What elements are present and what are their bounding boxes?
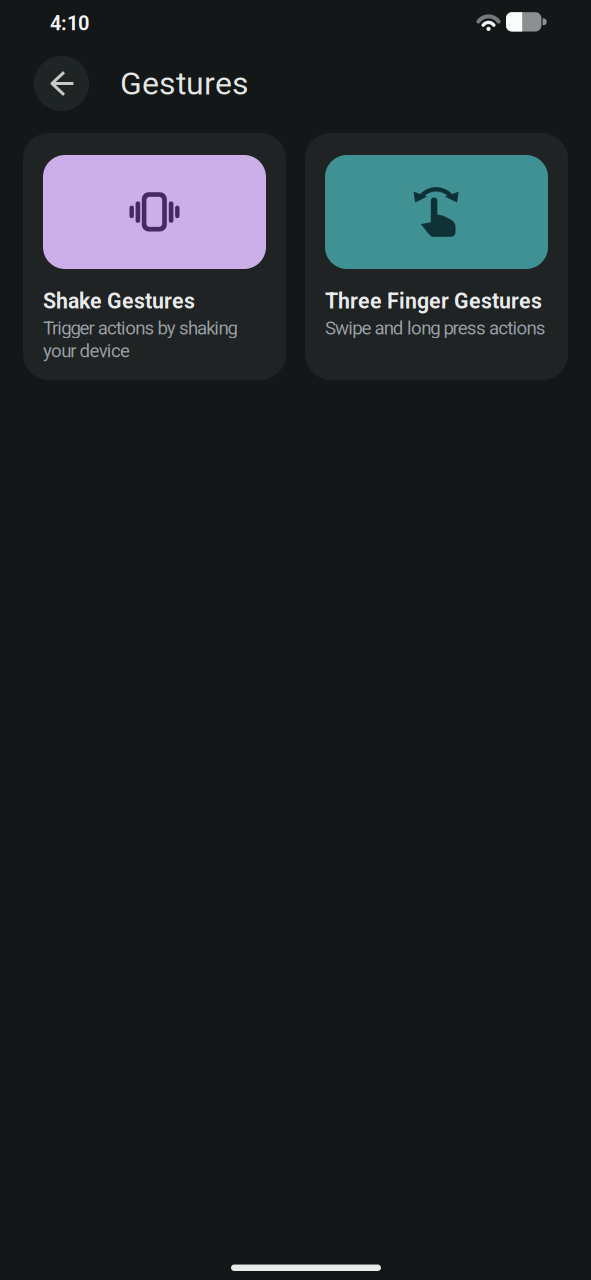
button[interactable]: Shake Gestures — [23, 133, 286, 380]
staticText: Gestures — [120, 65, 249, 102]
staticText: Swipe and long press actions — [325, 317, 546, 339]
staticText: Shake Gestures — [43, 289, 195, 313]
staticText: Three Finger Gestures — [325, 289, 542, 313]
button[interactable]: Back — [34, 56, 89, 111]
button[interactable]: Three Finger Gestures — [305, 133, 568, 380]
staticText: Trigger actions by shaking your device — [43, 317, 237, 362]
staticText: 4:10 — [50, 12, 89, 35]
